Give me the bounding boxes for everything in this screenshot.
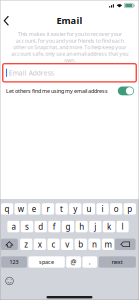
button[interactable]: x <box>34 239 46 250</box>
staticText: space <box>39 258 54 266</box>
button[interactable]: l <box>116 221 129 232</box>
button[interactable]: next <box>99 256 136 268</box>
staticText: i <box>102 204 104 214</box>
button[interactable]: p <box>124 203 136 215</box>
button[interactable]: q <box>1 203 13 215</box>
staticText: b <box>78 239 83 250</box>
button[interactable]: b <box>75 239 87 250</box>
staticText: e <box>32 204 37 214</box>
button[interactable]: f <box>48 221 60 232</box>
staticText: v <box>65 239 69 250</box>
button[interactable]: g <box>62 221 74 232</box>
staticText: g <box>65 221 70 232</box>
button[interactable]: m <box>102 239 114 250</box>
button[interactable]: w <box>14 203 27 215</box>
button[interactable]: y <box>69 203 81 215</box>
staticText: y <box>73 204 77 214</box>
button[interactable]: n <box>88 239 100 250</box>
staticText: @ <box>71 258 77 266</box>
button[interactable]: h <box>75 221 88 232</box>
staticText: Email Address <box>9 68 54 77</box>
staticText: l <box>122 221 124 232</box>
button[interactable]: 123 <box>1 256 27 268</box>
button[interactable]: Emoji keyboard <box>3 275 16 286</box>
staticText: o <box>114 204 119 214</box>
staticText: u <box>86 204 91 214</box>
staticText: a <box>11 221 15 232</box>
button[interactable]: Shift <box>1 239 18 250</box>
staticText: 123 <box>9 258 18 266</box>
button[interactable]: j <box>89 221 101 232</box>
staticText: m <box>105 239 112 250</box>
button[interactable]: Delete <box>115 239 136 250</box>
staticText: . <box>89 258 91 266</box>
button[interactable]: Back <box>0 11 14 29</box>
staticText: z <box>24 239 28 250</box>
staticText: h <box>79 221 84 232</box>
button[interactable]: Let others find me using my email addres… <box>0 83 139 98</box>
staticText: Let others find me using my email addres… <box>6 87 108 94</box>
button[interactable]: c <box>47 239 60 250</box>
button[interactable]: u <box>83 203 95 215</box>
staticText: r <box>46 204 49 214</box>
staticText: w <box>18 204 24 214</box>
button[interactable]: v <box>61 239 73 250</box>
staticText: This makes it easier for you to recover … <box>11 30 128 64</box>
button[interactable]: z <box>20 239 32 250</box>
staticText: j <box>94 221 96 232</box>
button[interactable]: e <box>28 203 40 215</box>
staticText: s <box>25 221 29 232</box>
staticText: next <box>112 258 123 266</box>
staticText: d <box>38 221 43 232</box>
button[interactable]: k <box>103 221 115 232</box>
button[interactable]: o <box>110 203 122 215</box>
staticText: p <box>127 204 132 214</box>
button[interactable]: r <box>42 203 54 215</box>
button[interactable]: a <box>7 221 19 232</box>
button[interactable]: s <box>21 221 33 232</box>
button[interactable]: space <box>28 256 65 268</box>
button[interactable]: t <box>55 203 68 215</box>
staticText: t <box>60 204 63 214</box>
staticText: q <box>4 204 9 214</box>
staticText: n <box>92 239 97 250</box>
button[interactable]: @ <box>66 256 81 268</box>
button[interactable]: d <box>35 221 47 232</box>
staticText: Email <box>56 14 82 27</box>
staticText: c <box>51 239 55 250</box>
button[interactable]: i <box>96 203 109 215</box>
button[interactable]: Email Address <box>3 64 136 82</box>
staticText: f <box>53 221 56 232</box>
button[interactable]: . <box>82 256 97 268</box>
staticText: k <box>107 221 111 232</box>
staticText: x <box>38 239 42 250</box>
